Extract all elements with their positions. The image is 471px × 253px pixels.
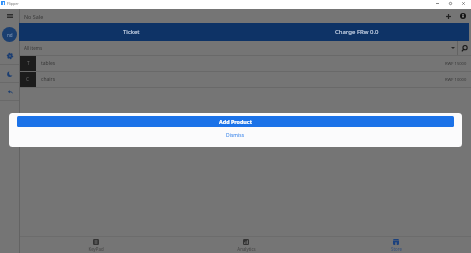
staticText: Add Product [219, 118, 252, 125]
staticText: tables [41, 60, 56, 67]
button[interactable]: Close [457, 0, 470, 8]
staticText: Analytics [237, 246, 256, 252]
button[interactable]: Analytics [171, 237, 321, 253]
button[interactable]: Expand filter [448, 41, 457, 55]
staticText: Dismiss [226, 132, 245, 139]
button[interactable]: Info [456, 9, 470, 23]
staticText: Charge FRw 0.0 [335, 28, 379, 36]
button[interactable]: C [20, 72, 471, 87]
staticText: nd [7, 32, 13, 38]
button[interactable]: Dark mode [0, 65, 19, 82]
button[interactable]: KeyPad [20, 237, 171, 253]
button[interactable]: Minimize [431, 0, 444, 8]
staticText: T [27, 60, 30, 67]
button[interactable]: Store [321, 237, 471, 253]
button[interactable]: Add Product [17, 116, 454, 127]
button[interactable]: Back [0, 83, 19, 100]
staticText: RWF 15000 [445, 61, 467, 67]
staticText: No Sale [24, 13, 44, 20]
staticText: Store [391, 246, 402, 252]
button[interactable]: Account nd [2, 27, 17, 42]
button[interactable]: Search [458, 41, 471, 55]
staticText: All items [24, 45, 43, 51]
staticText: C [26, 76, 30, 83]
staticText: Flipper [7, 1, 19, 6]
button[interactable]: T [20, 56, 471, 71]
button[interactable]: Add [441, 9, 455, 23]
staticText: RWF 10000 [445, 77, 467, 83]
button[interactable]: Charge FRw 0.0 [244, 23, 469, 41]
staticText: KeyPad [88, 246, 104, 252]
button[interactable]: Maximize [444, 0, 457, 8]
button[interactable]: Settings [0, 47, 19, 64]
button[interactable]: Menu [0, 9, 19, 23]
button[interactable]: Dismiss [17, 127, 454, 144]
button[interactable]: Ticket [19, 23, 244, 41]
staticText: Ticket [123, 28, 140, 36]
staticText: chairs [41, 76, 56, 83]
